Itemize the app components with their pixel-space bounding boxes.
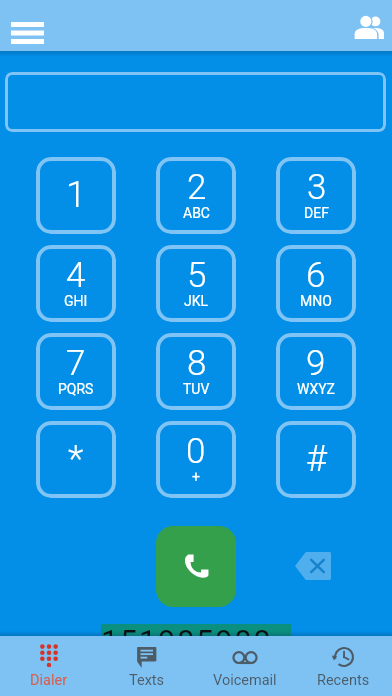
button[interactable]: Dialer (0, 636, 98, 696)
staticText: TUV (183, 381, 210, 397)
staticText: PQRS (58, 381, 94, 397)
staticText: 9 (306, 343, 326, 384)
button[interactable]: 0 (156, 421, 236, 498)
staticText: 2 (187, 167, 207, 208)
button[interactable]: # (276, 421, 356, 498)
staticText: Dialer (30, 672, 68, 689)
staticText: DEF (304, 205, 329, 221)
button[interactable]: 6 (276, 245, 356, 322)
button[interactable]: 5 (156, 245, 236, 322)
staticText: 6 (306, 255, 326, 296)
staticText: * (68, 438, 84, 480)
staticText: 5 (187, 255, 207, 296)
staticText: GHI (64, 293, 88, 309)
staticText: MNO (300, 293, 332, 309)
button[interactable]: * (36, 421, 116, 498)
staticText: Recents (317, 672, 370, 689)
button[interactable]: Recents (294, 636, 392, 696)
button[interactable]: Menu (0, 11, 55, 55)
staticText: 15198598841 (101, 623, 291, 647)
button[interactable]: Call (156, 526, 236, 607)
staticText: 8 (187, 343, 207, 384)
staticText: WXYZ (297, 381, 335, 397)
button[interactable]: Texts (98, 636, 196, 696)
staticText: + (192, 469, 200, 485)
staticText: ABC (183, 205, 210, 221)
staticText: # (306, 438, 327, 480)
button[interactable]: Contacts (345, 5, 392, 49)
staticText: Voicemail (213, 672, 277, 689)
button[interactable]: 9 (276, 333, 356, 410)
button[interactable]: 1 (36, 157, 116, 234)
button[interactable]: 8 (156, 333, 236, 410)
button[interactable]: 3 (276, 157, 356, 234)
staticText: JKL (184, 293, 209, 309)
staticText: 7 (66, 343, 86, 384)
button[interactable]: 2 (156, 157, 236, 234)
button[interactable]: 7 (36, 333, 116, 410)
staticText: 1 (66, 174, 86, 216)
button[interactable]: 4 (36, 245, 116, 322)
staticText: 3 (307, 167, 327, 208)
button[interactable]: Voicemail (196, 636, 294, 696)
staticText: Texts (129, 672, 165, 689)
staticText: 0 (186, 431, 206, 472)
button[interactable] (5, 72, 386, 132)
button[interactable]: Backspace (289, 542, 337, 590)
staticText: 4 (66, 255, 86, 296)
